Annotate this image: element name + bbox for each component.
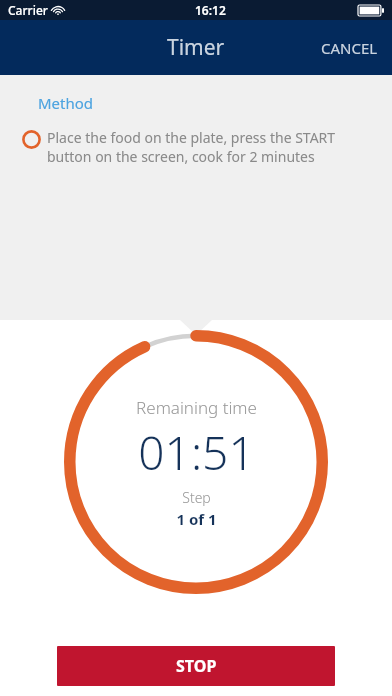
staticText: CANCEL — [321, 38, 378, 58]
button[interactable]: CANCEL — [307, 26, 392, 70]
staticText: Carrier — [8, 2, 48, 18]
staticText: Place the food on the plate, press the S… — [47, 128, 354, 166]
button[interactable]: Stop timer — [57, 646, 335, 686]
staticText: Method — [38, 93, 94, 113]
staticText: Timer — [167, 33, 225, 62]
staticText: Remaining time — [136, 396, 257, 419]
staticText: STOP — [176, 655, 217, 677]
staticText: 16:12 — [195, 2, 226, 18]
staticText: Step — [182, 488, 211, 507]
staticText: 01:51 — [138, 421, 255, 484]
staticText: 1 of 1 — [176, 509, 217, 529]
